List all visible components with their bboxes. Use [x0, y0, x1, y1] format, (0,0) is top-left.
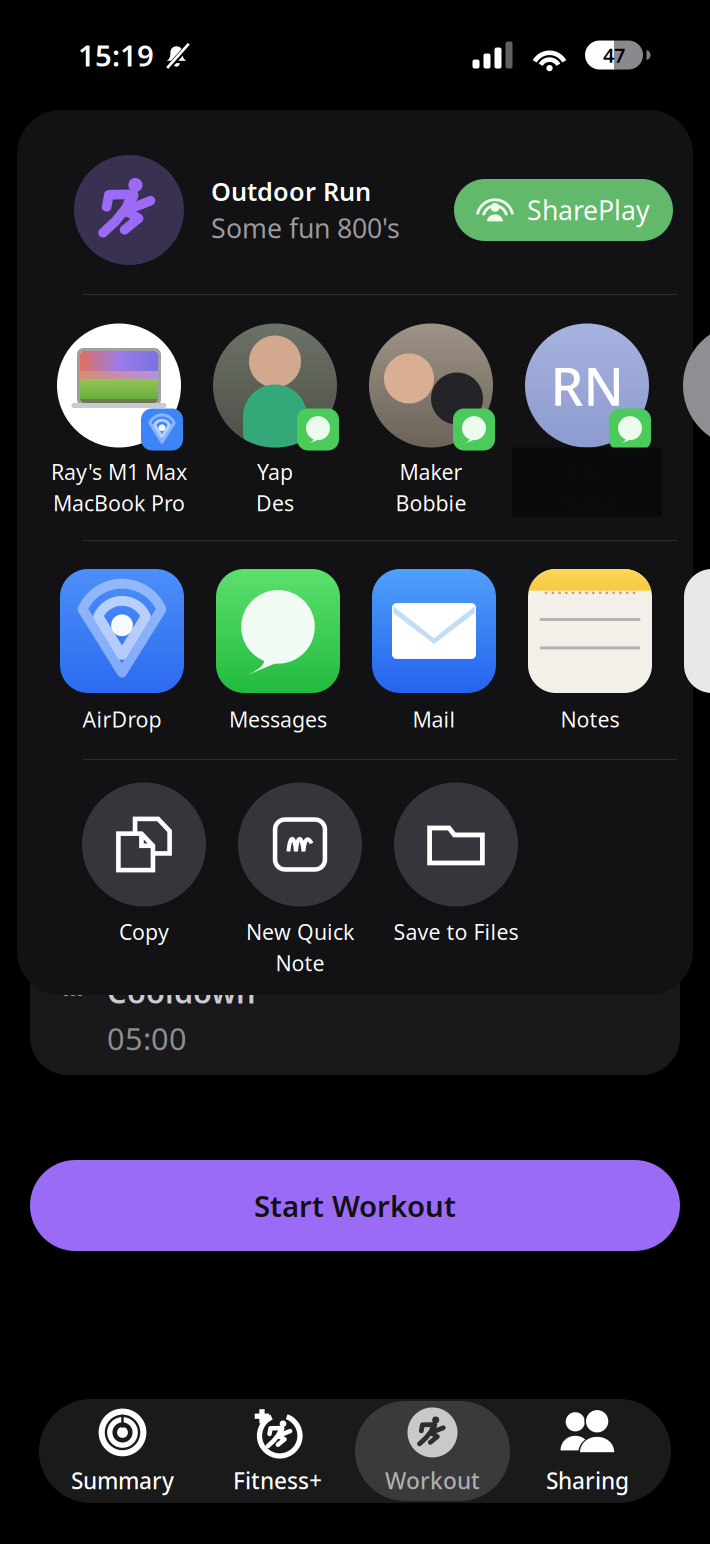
button[interactable]: Fitness+ [200, 1401, 355, 1501]
staticText: 05:00 [107, 1018, 187, 1059]
staticText: 15:19 [78, 35, 154, 74]
staticText: SharePlay [527, 192, 650, 228]
staticText: 47 [603, 42, 625, 68]
staticText: AirDrop [82, 705, 161, 733]
staticText: Some fun 800's [211, 210, 400, 245]
staticText: Messages [229, 705, 327, 733]
staticText: Save to Files [393, 917, 518, 946]
staticText: Workout [385, 1465, 480, 1495]
staticText: Des [256, 489, 294, 517]
staticText: Start Workout [254, 1186, 456, 1225]
staticText: Maker [399, 457, 462, 486]
staticText: Mail [412, 705, 455, 733]
staticText: Note [275, 949, 324, 977]
staticText: Cooldown [107, 971, 256, 1012]
button[interactable]: RN [509, 323, 665, 523]
staticText: Yap [257, 457, 293, 486]
staticText: Summary [71, 1465, 174, 1495]
button[interactable]: Summary [45, 1401, 200, 1501]
staticText: Sharing [546, 1465, 629, 1495]
staticText: Copy [119, 917, 169, 946]
staticText: New Quick [246, 917, 354, 946]
button[interactable]: Messages [200, 569, 356, 743]
button[interactable]: New Quick [222, 782, 378, 982]
button[interactable]: Save to Files [378, 782, 534, 982]
button[interactable]: Sharing [510, 1401, 665, 1501]
button[interactable]: Yap [197, 323, 353, 523]
button[interactable]: SharePlay [454, 179, 673, 241]
staticText: Outdoor Run [211, 174, 371, 208]
button[interactable]: Mail [356, 569, 512, 743]
staticText: Notes [560, 705, 619, 733]
button[interactable]: Maker [353, 323, 509, 523]
staticText: Ray's M1 Max [51, 457, 187, 486]
staticText: Bobbie [395, 489, 466, 517]
button[interactable]: Workout [355, 1401, 510, 1501]
button[interactable]: Copy [66, 782, 222, 982]
button[interactable]: AirDrop [44, 569, 200, 743]
button[interactable]: Ray's M1 Max [41, 323, 197, 523]
staticText: Fitness+ [233, 1465, 322, 1495]
staticText: RN [550, 351, 623, 420]
staticText: MacBook Pro [53, 489, 185, 517]
button[interactable]: Start Workout [30, 1160, 680, 1251]
button[interactable]: Notes [512, 569, 668, 743]
